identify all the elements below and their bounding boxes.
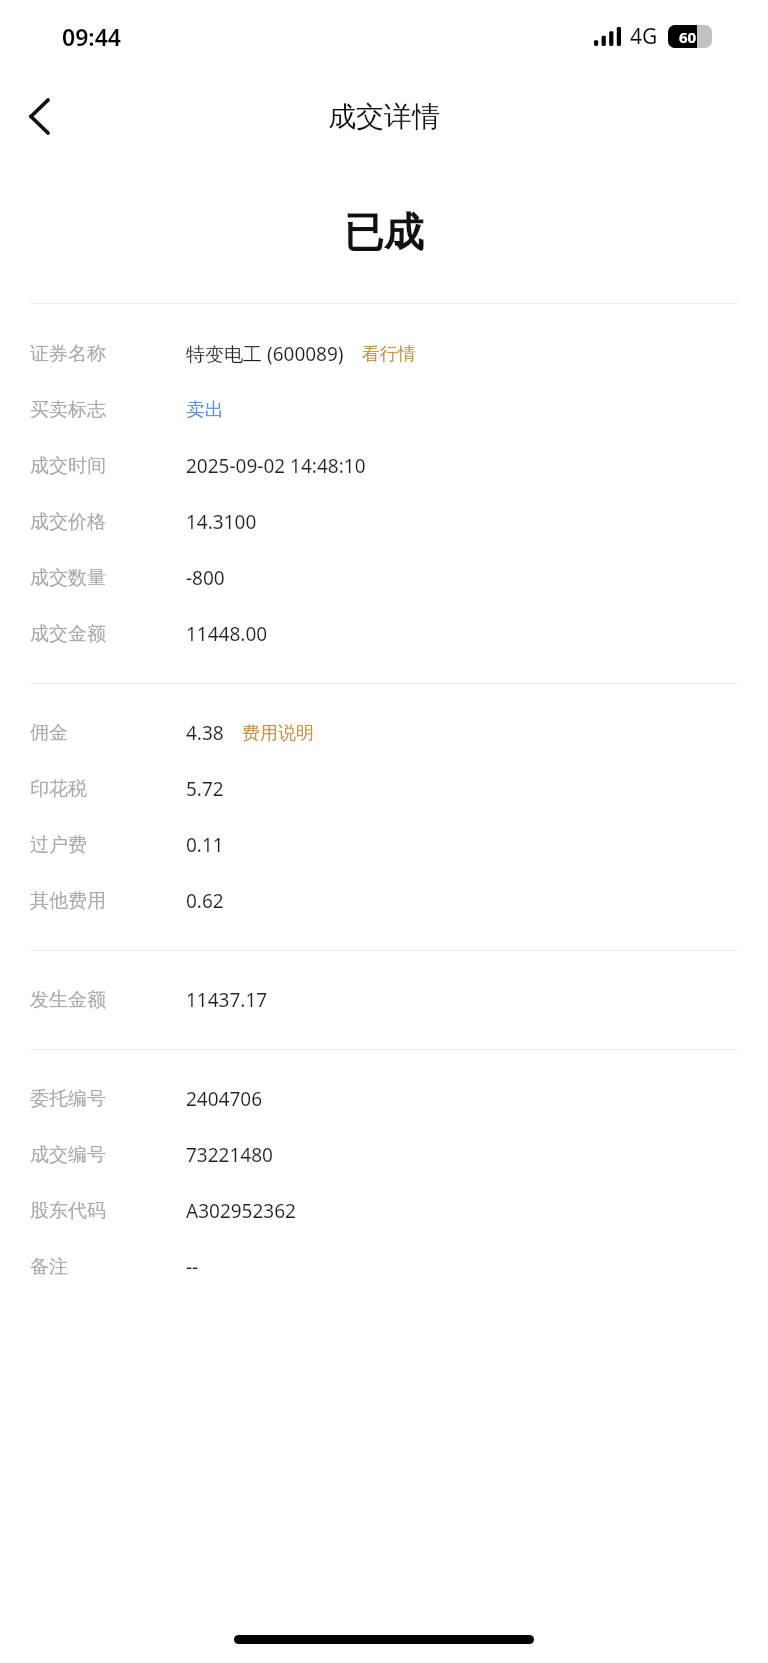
staticText: 特变电工 (600089): [186, 341, 344, 367]
button[interactable]: 过户费: [0, 817, 768, 873]
staticText: 其他费用: [30, 889, 106, 913]
staticText: 11448.00: [186, 621, 268, 647]
button[interactable]: 证券名称: [0, 326, 768, 382]
staticText: 成交金额: [30, 622, 106, 646]
button[interactable]: 成交金额: [0, 606, 768, 662]
staticText: 证券名称: [30, 342, 106, 366]
staticText: -800: [186, 565, 225, 591]
staticText: 4.38: [186, 720, 224, 746]
staticText: 5.72: [186, 776, 224, 802]
staticText: 60: [679, 27, 697, 47]
staticText: 0.11: [186, 832, 224, 858]
staticText: 备注: [30, 1255, 68, 1279]
staticText: 已成: [344, 207, 424, 257]
button[interactable]: 佣金: [0, 705, 768, 761]
staticText: 14.3100: [186, 509, 257, 535]
staticText: 成交编号: [30, 1143, 106, 1167]
staticText: 佣金: [30, 721, 68, 745]
button[interactable]: 成交时间: [0, 438, 768, 494]
staticText: 73221480: [186, 1142, 273, 1168]
button[interactable]: 备注: [0, 1239, 768, 1295]
staticText: 过户费: [30, 833, 87, 857]
staticText: 4G: [630, 22, 658, 51]
button[interactable]: 其他费用: [0, 873, 768, 929]
staticText: 成交价格: [30, 510, 106, 534]
button[interactable]: 成交数量: [0, 550, 768, 606]
button[interactable]: 成交编号: [0, 1127, 768, 1183]
button[interactable]: 委托编号: [0, 1071, 768, 1127]
button[interactable]: 印花税: [0, 761, 768, 817]
staticText: 2404706: [186, 1086, 263, 1112]
staticText: 11437.17: [186, 987, 268, 1013]
staticText: 2025-09-02 14:48:10: [186, 453, 366, 479]
staticText: 卖出: [186, 398, 224, 422]
button[interactable]: 股东代码: [0, 1183, 768, 1239]
staticText: 成交详情: [328, 99, 440, 134]
staticText: 0.62: [186, 888, 224, 914]
staticText: 印花税: [30, 777, 87, 801]
staticText: 委托编号: [30, 1087, 106, 1111]
staticText: 股东代码: [30, 1199, 106, 1223]
button[interactable]: Back: [0, 77, 78, 155]
button[interactable]: 费用说明: [242, 722, 314, 745]
button[interactable]: 买卖标志: [0, 382, 768, 438]
staticText: A302952362: [186, 1198, 296, 1224]
staticText: 买卖标志: [30, 398, 106, 422]
staticText: 发生金额: [30, 988, 106, 1012]
staticText: 成交数量: [30, 566, 106, 590]
button[interactable]: 成交价格: [0, 494, 768, 550]
staticText: 09:44: [62, 21, 121, 52]
button[interactable]: 看行情: [362, 343, 416, 366]
button[interactable]: 发生金额: [0, 972, 768, 1028]
staticText: 成交时间: [30, 454, 106, 478]
staticText: --: [186, 1254, 199, 1280]
